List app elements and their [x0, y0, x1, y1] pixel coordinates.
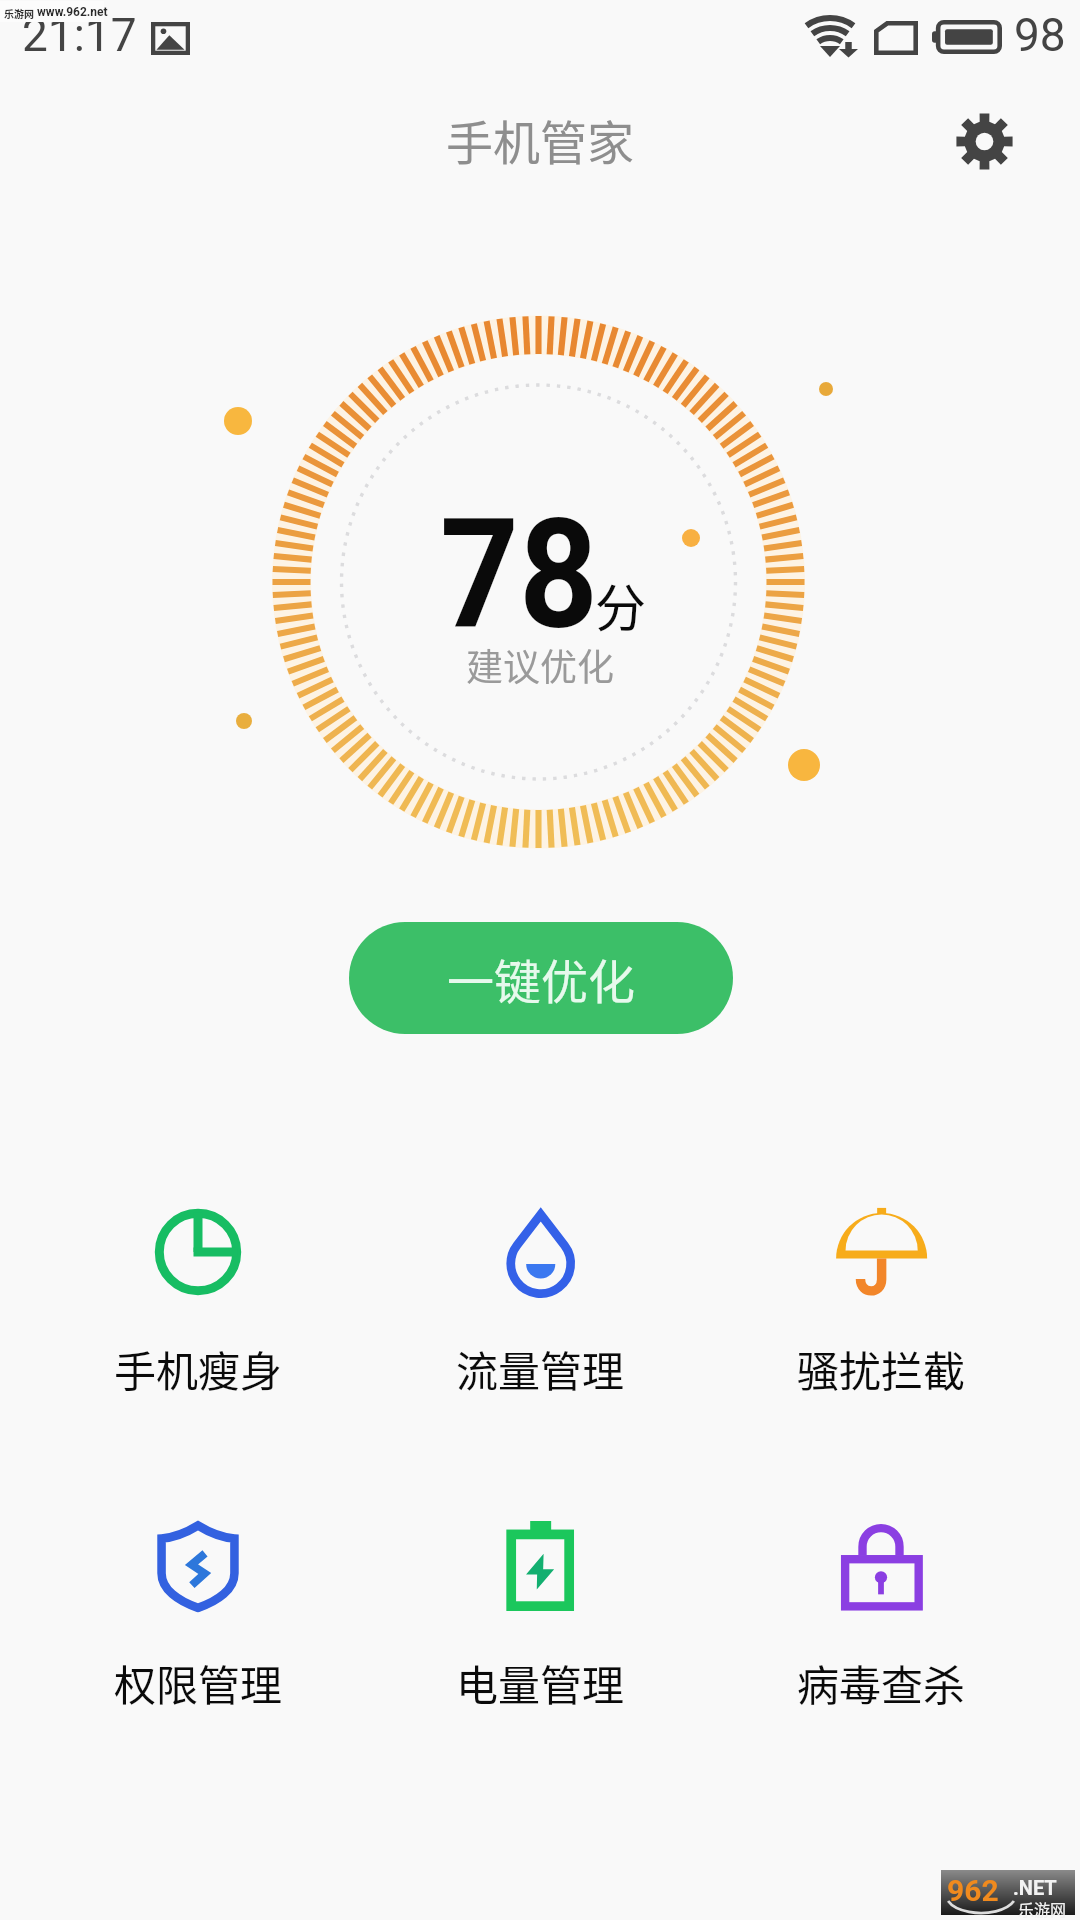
staticText: 21:17	[22, 8, 137, 62]
staticText: 乐游网	[1018, 1897, 1067, 1920]
button[interactable]: 手机瘦身	[27, 1179, 369, 1395]
button[interactable]: 流量管理	[369, 1179, 711, 1395]
staticText: 98	[1014, 8, 1066, 62]
staticText: 病毒查杀	[710, 1652, 1052, 1713]
staticText: 建议优化	[0, 638, 1080, 692]
staticText: 78	[440, 485, 598, 664]
staticText: 手机瘦身	[27, 1338, 369, 1399]
button[interactable]: 骚扰拦截	[710, 1179, 1052, 1395]
staticText: 分	[595, 568, 647, 642]
staticText: 一键优化	[447, 944, 635, 1012]
button[interactable]: 电量管理	[369, 1493, 711, 1709]
staticText: .NET	[1013, 1876, 1057, 1899]
staticText: 乐游网	[4, 6, 34, 20]
staticText: www.962.net	[37, 5, 108, 19]
staticText: 962	[947, 1873, 999, 1908]
staticText: 权限管理	[27, 1652, 369, 1713]
button[interactable]: 病毒查杀	[710, 1493, 1052, 1709]
button[interactable]: 权限管理	[27, 1493, 369, 1709]
staticText: 流量管理	[369, 1338, 711, 1399]
staticText: 电量管理	[369, 1652, 711, 1713]
staticText: 骚扰拦截	[710, 1338, 1052, 1399]
button[interactable]: 一键优化	[349, 922, 733, 1034]
staticText: 手机管家	[0, 105, 1080, 173]
button[interactable]: Settings	[936, 93, 1032, 189]
